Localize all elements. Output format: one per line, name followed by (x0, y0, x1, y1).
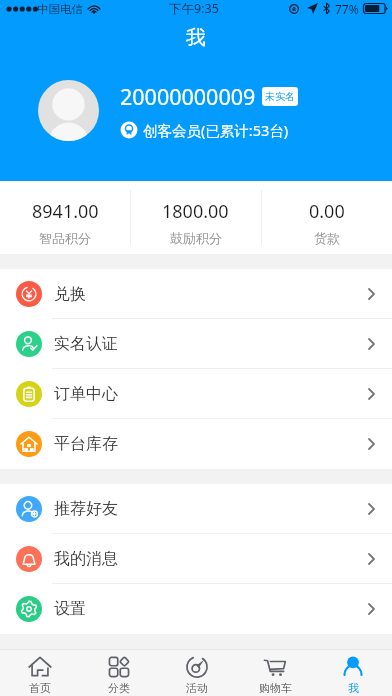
staticText: 首页 (29, 681, 51, 695)
staticText: 分类 (108, 681, 130, 695)
button[interactable]: 订单中心 (0, 369, 392, 419)
button[interactable]: 分类 (79, 650, 158, 696)
staticText: 鼓励积分 (170, 230, 222, 246)
button[interactable]: 1800.00 (130, 181, 261, 254)
staticText: 中国电信 (37, 2, 83, 16)
staticText: 8941.00 (32, 199, 99, 224)
staticText: 推荐好友 (54, 499, 118, 519)
staticText: 我 (348, 681, 359, 695)
button[interactable]: 购物车 (236, 650, 314, 696)
staticText: 77% (335, 1, 359, 17)
button[interactable]: 平台库存 (0, 419, 392, 469)
button[interactable]: 我的消息 (0, 534, 392, 584)
button[interactable]: 首页 (0, 650, 79, 696)
button[interactable]: 我 (314, 650, 392, 696)
staticText: 实名认证 (54, 334, 118, 354)
staticText: 未实名 (265, 90, 295, 103)
button[interactable]: 0.00 (261, 181, 392, 254)
button[interactable]: 活动 (158, 650, 236, 696)
staticText: 订单中心 (54, 384, 118, 404)
staticText: 兑换 (54, 284, 86, 304)
button[interactable]: 8941.00 (0, 181, 130, 254)
button[interactable]: 兑换 (0, 269, 392, 319)
staticText: 平台库存 (54, 434, 118, 454)
staticText: 20000000009 (120, 82, 256, 111)
button[interactable]: 推荐好友 (0, 484, 392, 534)
staticText: 智品积分 (39, 230, 91, 246)
staticText: 下午9:35 (169, 0, 219, 17)
staticText: 1800.00 (162, 199, 229, 224)
staticText: 货款 (314, 230, 340, 246)
staticText: 设置 (54, 599, 86, 619)
staticText: 购物车 (259, 681, 292, 695)
staticText: 活动 (186, 681, 208, 695)
button[interactable]: 设置 (0, 584, 392, 634)
staticText: 我 (186, 25, 206, 50)
staticText: 0.00 (309, 199, 345, 224)
staticText: 创客会员(已累计:53台) (143, 120, 289, 140)
staticText: 我的消息 (54, 549, 118, 569)
button[interactable]: 实名认证 (0, 319, 392, 369)
